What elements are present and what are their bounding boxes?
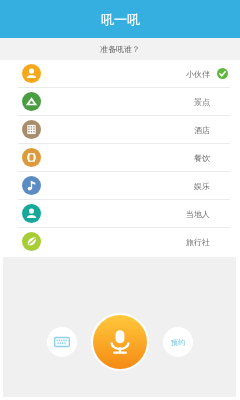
button[interactable]: 娱乐 <box>0 172 240 199</box>
button[interactable]: Keyboard input <box>47 327 77 357</box>
button[interactable]: 景点 <box>0 88 240 115</box>
staticText: 准备吼谁？ <box>100 44 140 54</box>
staticText: 当地人 <box>186 209 210 219</box>
staticText: 餐饮 <box>194 153 210 163</box>
button[interactable]: 餐饮 <box>0 144 240 171</box>
staticText: 景点 <box>194 97 210 107</box>
staticText: 娱乐 <box>194 181 210 191</box>
button[interactable]: 酒店 <box>0 116 240 143</box>
button[interactable]: 旅行社 <box>0 228 240 255</box>
staticText: 小伙伴 <box>186 69 210 79</box>
button[interactable]: Record voice <box>93 315 147 369</box>
staticText: 酒店 <box>194 125 210 135</box>
button[interactable]: 预约 <box>163 327 193 357</box>
button[interactable]: 当地人 <box>0 200 240 227</box>
staticText: 预约 <box>171 338 185 347</box>
staticText: 吼一吼 <box>101 11 140 27</box>
button[interactable]: 小伙伴 <box>0 60 240 87</box>
staticText: 旅行社 <box>186 237 210 247</box>
